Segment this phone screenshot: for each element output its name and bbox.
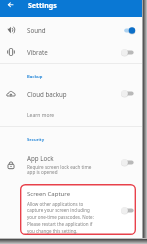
staticText: Security (27, 137, 45, 143)
staticText: Vibrate (27, 48, 48, 56)
staticText: Settings (28, 1, 57, 11)
staticText: Learn more (27, 112, 55, 119)
button[interactable]: Back (6, 0, 16, 10)
staticText: Allow other applications to capture your… (27, 201, 94, 235)
button[interactable]: App Lock (0, 150, 143, 178)
staticText: Require screen lock each time app is ope… (27, 164, 92, 176)
button[interactable]: Sound (0, 19, 143, 41)
staticText: Cloud backup (27, 90, 67, 98)
button[interactable]: Learn more (0, 107, 143, 123)
staticText: App Lock (27, 154, 54, 162)
staticText: Backup (27, 74, 43, 80)
button[interactable]: Vibrate (0, 41, 143, 63)
button[interactable]: Cloud backup (0, 83, 143, 104)
button[interactable]: Screen Capture (20, 184, 136, 235)
staticText: Sound (27, 26, 46, 34)
staticText: Screen Capture (27, 190, 71, 198)
